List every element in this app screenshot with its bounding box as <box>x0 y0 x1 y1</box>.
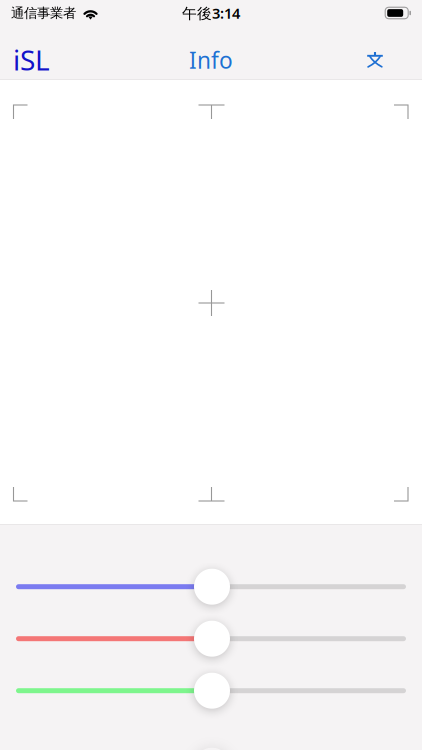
staticText: 午後3:14 <box>182 3 240 23</box>
button[interactable]: iSL <box>0 26 62 80</box>
button[interactable]: Green channel <box>16 673 406 709</box>
button[interactable]: Info <box>177 26 245 80</box>
staticText: Info <box>189 45 233 75</box>
staticText: 通信事業者 <box>11 5 76 21</box>
button[interactable]: Blue channel <box>16 569 406 605</box>
button[interactable]: Red channel <box>16 621 406 657</box>
staticText: iSL <box>13 41 50 78</box>
button[interactable]: Translate <box>341 26 422 80</box>
